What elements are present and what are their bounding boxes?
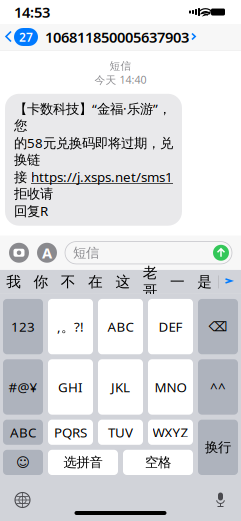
button[interactable]: 老哥 [137,271,164,293]
staticText: 这 [115,273,130,291]
button[interactable]: 换行 [198,420,238,475]
button[interactable]: PQRS [48,420,93,445]
button[interactable]: 这 [109,271,136,293]
staticText: 选拼音 [63,454,102,471]
staticText: JKL [111,378,130,396]
staticText: 短信 [109,59,131,73]
button[interactable]: Switch keyboard [9,486,36,513]
button[interactable]: 一 [164,271,191,293]
button[interactable]: ,。?! [48,299,93,354]
staticText: 一 [170,273,185,291]
button[interactable]: TUV [98,420,143,445]
staticText: ABC [107,318,133,335]
button[interactable]: Dictation [209,486,232,513]
staticText: A [42,243,52,262]
button[interactable]: Camera [9,243,29,263]
staticText: MNO [154,378,186,396]
staticText: ^^ [210,378,226,396]
button[interactable]: ☺ [3,450,43,475]
staticText: 的58元兑换码即将过期，兑换链 [14,134,173,168]
staticText: 是 [197,273,212,291]
button[interactable]: Back, 27 unread [0,23,38,51]
button[interactable]: 选拼音 [48,450,118,475]
staticText: 不 [61,273,76,291]
staticText: 123 [11,318,35,335]
staticText: ,。?! [57,318,84,335]
button[interactable]: 空格 [123,450,193,475]
button[interactable]: ABC [98,299,143,354]
button[interactable]: More candidates [219,271,241,293]
staticText: 接 https://j.xsps.net/sms1 拒收请 [14,168,173,202]
staticText: ⌫ [208,319,227,334]
button[interactable]: Send [213,245,229,261]
button[interactable]: 在 [82,271,109,293]
staticText: 【卡数科技】“金福·乐游”，您 [14,100,171,134]
button[interactable]: GHI [48,359,93,415]
button[interactable]: 123 [3,299,43,354]
button[interactable]: WXYZ [148,420,193,445]
button[interactable]: DEF [148,299,193,354]
button[interactable]: JKL [98,359,143,415]
staticText: PQRS [54,423,87,441]
staticText: 你 [33,273,48,291]
button[interactable]: 你 [27,271,55,293]
button[interactable]: 不 [55,271,82,293]
staticText: ABC [10,423,36,441]
staticText: 在 [88,273,103,291]
staticText: DEF [158,318,182,335]
button[interactable]: #@¥ [3,359,43,415]
staticText: WXYZ [152,423,188,441]
staticText: 我 [6,273,21,291]
button[interactable]: 是 [191,271,218,293]
staticText: 106811850005637903 [45,27,189,47]
staticText: 今天 14:40 [94,73,146,87]
staticText: 短信 [73,245,99,261]
staticText: GHI [58,378,83,396]
button[interactable]: ⌫ [198,299,238,354]
staticText: 老哥 [143,264,158,300]
button[interactable]: 我 [0,271,27,293]
staticText: 27 [19,29,33,45]
staticText: ☺ [16,455,30,470]
button[interactable]: ^^ [198,359,238,415]
button[interactable]: App Store [37,243,57,263]
staticText: TUV [108,423,133,441]
staticText: 空格 [145,454,171,471]
button[interactable]: ABC [3,420,43,445]
staticText: 换行 [205,439,231,455]
staticText: 14:53 [14,2,50,22]
staticText: #@¥ [8,378,37,396]
staticText: 回复R [14,202,48,220]
button[interactable]: MNO [148,359,193,415]
